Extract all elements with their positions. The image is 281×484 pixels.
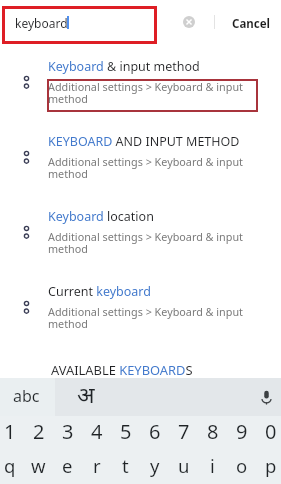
staticText: Keyboard location	[48, 208, 154, 225]
staticText: 9	[236, 418, 248, 445]
staticText: Additional settings > Keyboard & input m…	[48, 154, 243, 181]
staticText: 8	[207, 418, 219, 445]
staticText: 0	[265, 418, 277, 445]
button[interactable]: 2	[24, 416, 53, 450]
button[interactable]: 6	[140, 416, 169, 450]
button[interactable]: 0	[256, 416, 281, 450]
button[interactable]: KEYBOARD AND INPUT METHOD	[0, 125, 281, 200]
button[interactable]: 7	[169, 416, 198, 450]
staticText: 1	[4, 418, 16, 445]
button[interactable]: 1	[0, 416, 24, 450]
staticText: abc	[13, 385, 40, 407]
staticText: y	[150, 453, 160, 478]
staticText: Additional settings > Keyboard & input m…	[48, 79, 243, 106]
button[interactable]: u	[169, 450, 198, 484]
button[interactable]: keyboard	[2, 6, 157, 44]
staticText: Additional settings > Keyboard & input m…	[48, 304, 243, 331]
button[interactable]: p	[256, 450, 281, 484]
staticText: 4	[91, 418, 103, 445]
staticText: t	[122, 453, 129, 478]
button[interactable]: Clear search	[177, 10, 200, 33]
staticText: Additional settings > Keyboard & input m…	[48, 229, 243, 256]
button[interactable]: abc	[0, 378, 55, 416]
staticText: 3	[62, 418, 74, 445]
staticText: q	[4, 453, 16, 478]
staticText: keyboard	[15, 15, 68, 31]
staticText: 6	[149, 418, 161, 445]
staticText: अ	[77, 378, 95, 409]
staticText: p	[265, 453, 277, 478]
staticText: Current keyboard	[48, 283, 151, 300]
staticText: Keyboard & input method	[48, 58, 200, 75]
button[interactable]: q	[0, 450, 24, 484]
staticText: u	[178, 453, 190, 478]
button[interactable]: Current keyboard	[0, 275, 281, 350]
staticText: w	[31, 453, 46, 478]
staticText: Cancel	[232, 16, 270, 32]
button[interactable]: Keyboard location	[0, 200, 281, 275]
button[interactable]: 4	[82, 416, 111, 450]
button[interactable]: e	[53, 450, 82, 484]
button[interactable]: r	[82, 450, 111, 484]
button[interactable]: 5	[111, 416, 140, 450]
button[interactable]: t	[111, 450, 140, 484]
staticText: i	[210, 453, 215, 478]
staticText: 2	[33, 418, 45, 445]
staticText: e	[62, 453, 73, 478]
staticText: 5	[120, 418, 132, 445]
button[interactable]: w	[24, 450, 53, 484]
button[interactable]: 3	[53, 416, 82, 450]
button[interactable]: अ	[55, 378, 251, 416]
button[interactable]: Cancel	[222, 7, 280, 41]
staticText: 7	[178, 418, 190, 445]
staticText: r	[93, 453, 101, 478]
button[interactable]: Voice input	[251, 378, 281, 416]
staticText: AVAILABLE KEYBOARDS	[51, 361, 193, 379]
button[interactable]: y	[140, 450, 169, 484]
button[interactable]: i	[198, 450, 227, 484]
staticText: KEYBOARD AND INPUT METHOD	[48, 133, 240, 150]
button[interactable]: Keyboard & input method	[0, 50, 281, 125]
button[interactable]: o	[227, 450, 256, 484]
button[interactable]: 9	[227, 416, 256, 450]
button[interactable]: 8	[198, 416, 227, 450]
staticText: o	[236, 453, 248, 478]
